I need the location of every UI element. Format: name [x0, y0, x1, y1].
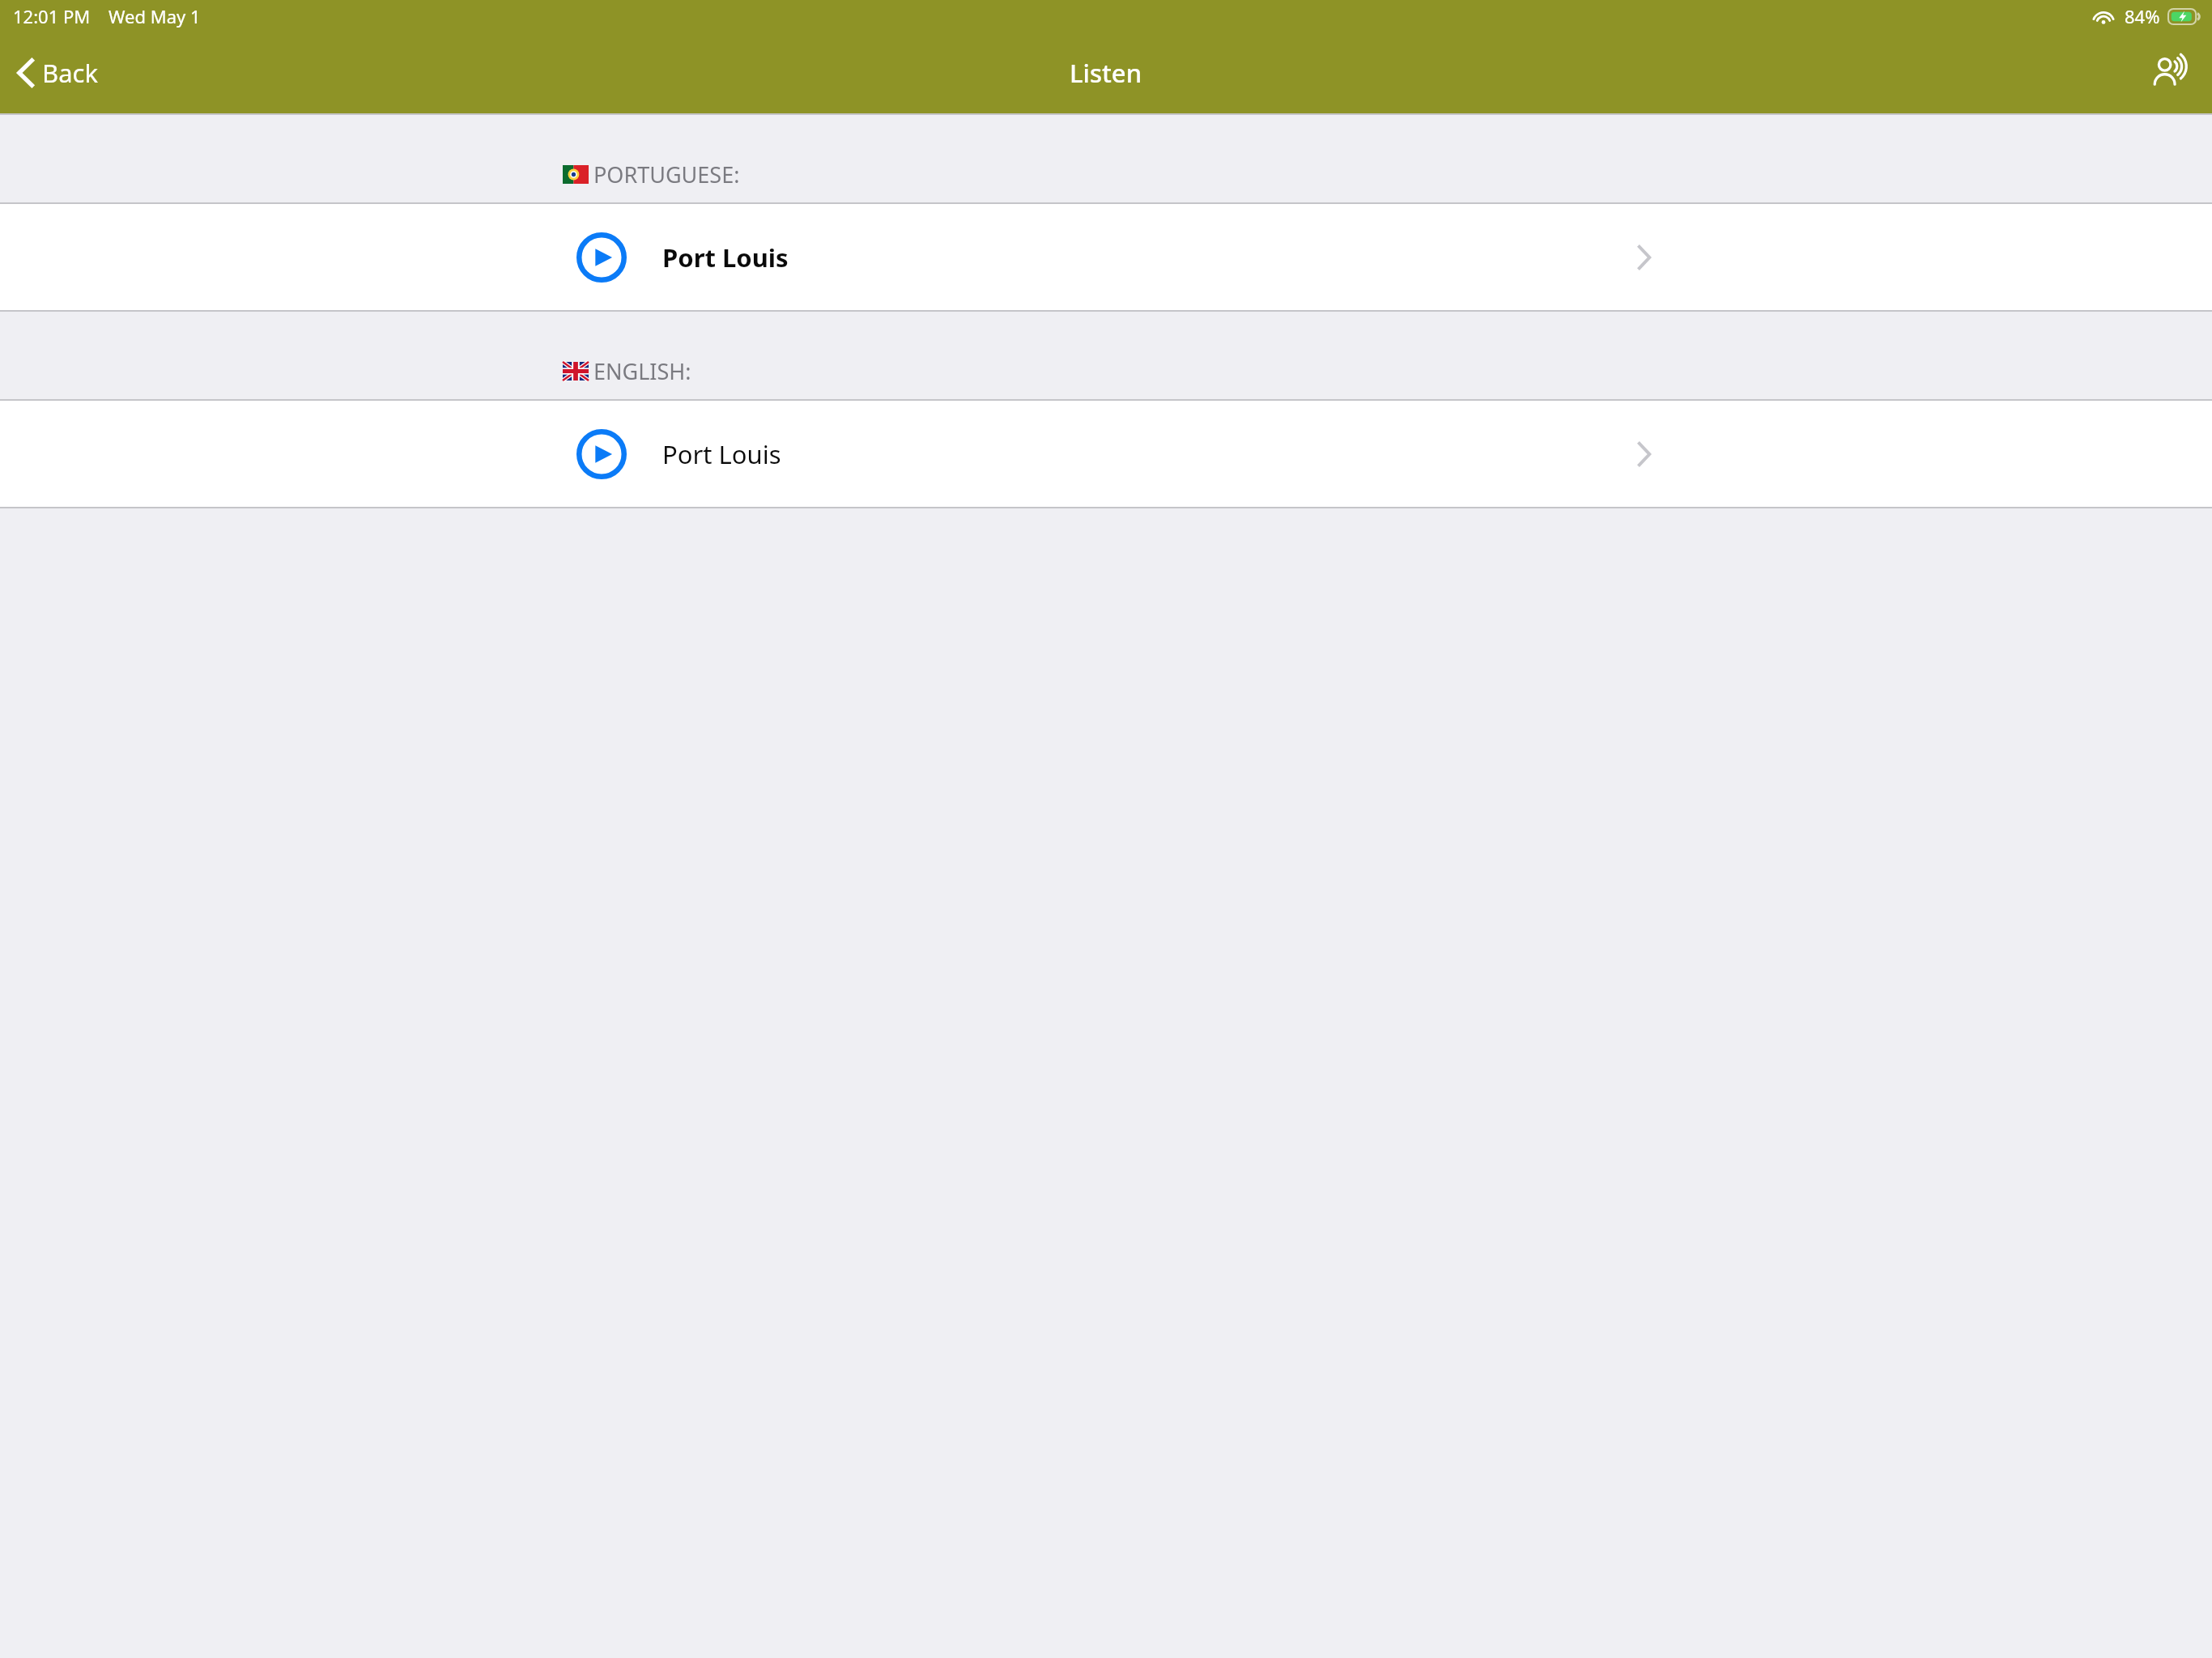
staticText: 12:01 PM: [13, 4, 91, 28]
staticText: Port Louis: [662, 437, 781, 471]
staticText: ENGLISH:: [593, 356, 691, 386]
staticText: PORTUGUESE:: [593, 159, 740, 189]
staticText: Wed May 1: [108, 4, 201, 28]
button[interactable]: Back: [0, 32, 117, 113]
button[interactable]: Port Louis: [0, 204, 2212, 310]
staticText: Listen: [1070, 56, 1142, 90]
staticText: Back: [42, 56, 98, 90]
staticText: Port Louis: [662, 240, 789, 274]
button[interactable]: Voice settings: [2129, 32, 2212, 113]
staticText: 84%: [2125, 4, 2160, 28]
button[interactable]: Port Louis: [0, 401, 2212, 507]
